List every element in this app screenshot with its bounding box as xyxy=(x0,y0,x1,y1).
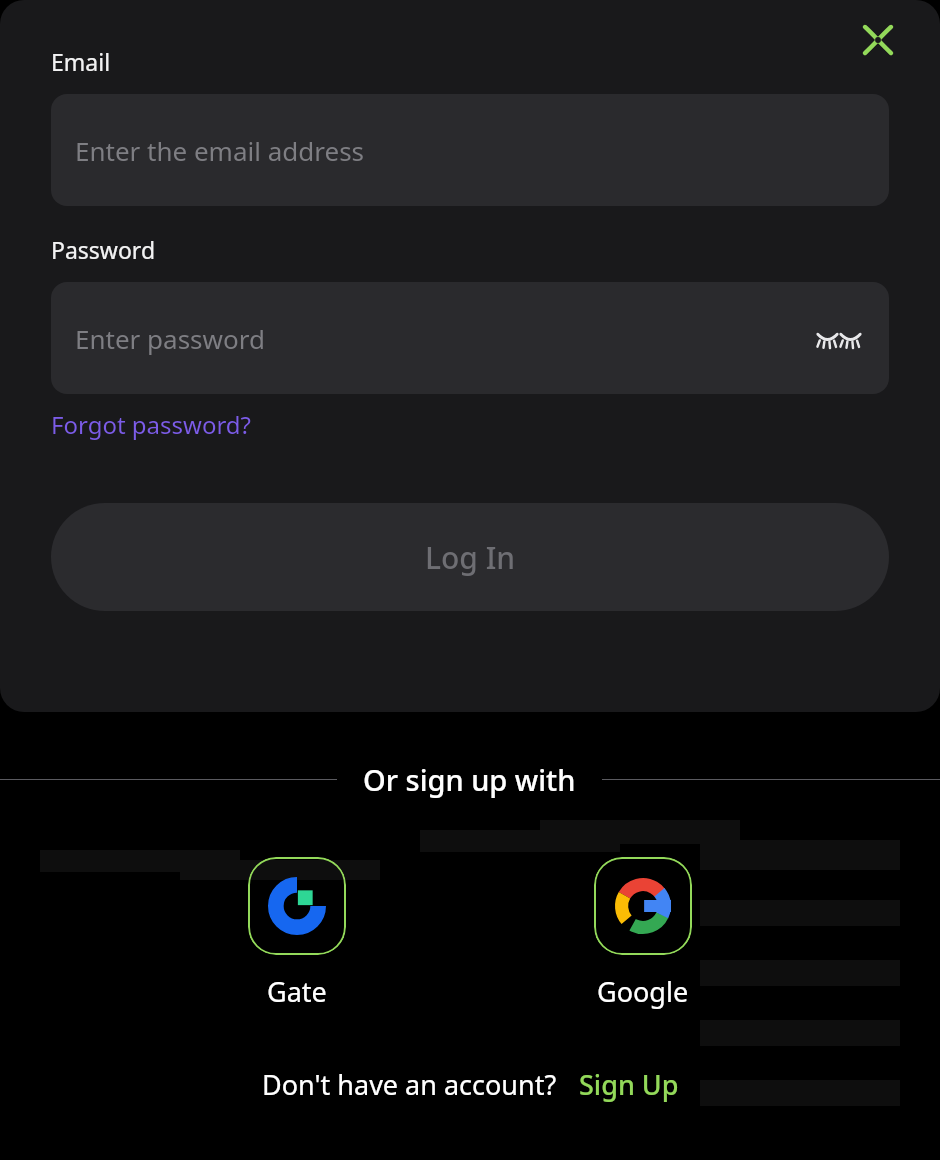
button[interactable]: Enter password xyxy=(51,282,889,394)
button[interactable]: Enter the email address xyxy=(51,94,889,206)
staticText: Google xyxy=(597,973,689,1010)
staticText: Gate xyxy=(267,973,327,1010)
button[interactable]: Forgot password? xyxy=(51,408,252,441)
staticText: Password xyxy=(51,234,156,265)
staticText: Don't have an account? xyxy=(262,1066,557,1103)
button[interactable]: Sign Up xyxy=(579,1066,679,1103)
staticText: Forgot password? xyxy=(51,408,252,441)
button[interactable]: Close xyxy=(854,16,902,64)
button[interactable]: Google xyxy=(590,857,696,1010)
other: Close xyxy=(861,23,895,57)
staticText: Email xyxy=(51,46,111,77)
staticText: Enter password xyxy=(75,321,265,356)
button[interactable]: Gate xyxy=(244,857,350,1010)
button[interactable]: Log In xyxy=(51,503,889,611)
staticText: Or sign up with xyxy=(363,760,576,799)
staticText: Enter the email address xyxy=(75,133,365,168)
staticText: Log In xyxy=(425,537,516,578)
staticText: Sign Up xyxy=(579,1066,679,1103)
button[interactable]: Show password xyxy=(813,312,865,364)
